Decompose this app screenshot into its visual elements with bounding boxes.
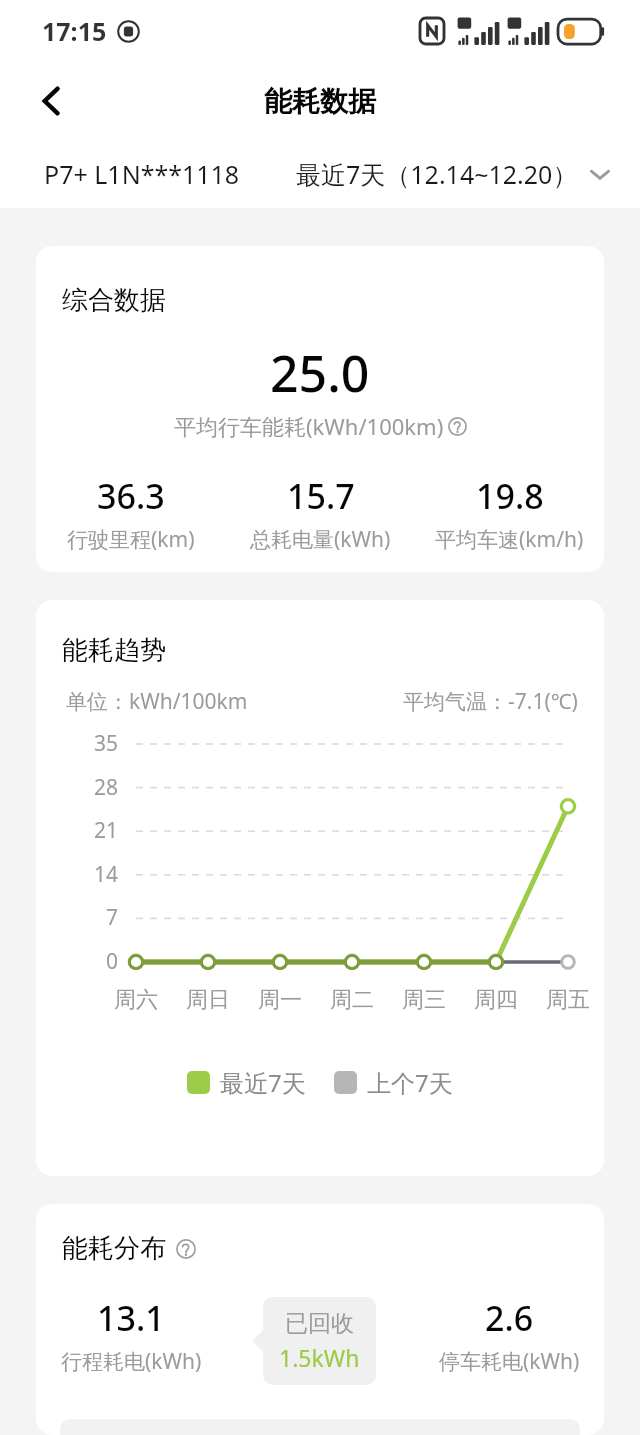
staticText: 总耗电量(kWh) xyxy=(250,525,391,554)
staticText: 17:15 xyxy=(42,14,107,48)
button[interactable]: P7+ L1N***1118 xyxy=(44,157,240,191)
button[interactable]: Back xyxy=(20,69,84,133)
staticText: 已回收 xyxy=(285,1309,354,1338)
staticText: 14 xyxy=(93,860,118,889)
staticText: 综合数据 xyxy=(62,284,166,317)
staticText: P7+ L1N***1118 xyxy=(44,157,240,191)
staticText: 平均车速(km/h) xyxy=(435,525,584,554)
staticText: 平均气温：-7.1(℃) xyxy=(403,687,578,716)
staticText: 周五 xyxy=(546,986,590,1014)
staticText: 周四 xyxy=(474,986,518,1014)
button[interactable]: 能耗分布 xyxy=(62,1232,196,1265)
button[interactable]: 综合数据 xyxy=(36,246,604,572)
staticText: 能耗数据 xyxy=(264,84,376,119)
staticText: 周六 xyxy=(114,986,158,1014)
staticText: 上个7天 xyxy=(367,1066,453,1099)
staticText: 周一 xyxy=(258,986,302,1014)
staticText: 周二 xyxy=(330,986,374,1014)
button[interactable]: 已回收 xyxy=(252,1297,376,1385)
button[interactable]: 最近7天 xyxy=(187,1066,306,1099)
button[interactable]: 36.3 xyxy=(36,473,226,554)
staticText: 单位：kWh/100km xyxy=(66,687,248,716)
button[interactable]: 15.7 xyxy=(226,473,415,554)
staticText: 周三 xyxy=(402,986,446,1014)
staticText: 能耗趋势 xyxy=(62,634,166,667)
staticText: 19.8 xyxy=(476,473,544,519)
button[interactable]: 上个7天 xyxy=(334,1066,453,1099)
staticText: 行程耗电(kWh) xyxy=(61,1347,202,1376)
staticText: 0 xyxy=(105,947,118,976)
staticText: 停车耗电(kWh) xyxy=(439,1347,580,1376)
staticText: 15.7 xyxy=(287,473,355,519)
button[interactable]: 2.6 xyxy=(415,1295,604,1376)
staticText: 21 xyxy=(93,816,118,845)
staticText: 13.1 xyxy=(97,1295,165,1341)
button[interactable]: 13.1 xyxy=(36,1295,226,1376)
staticText: 1.5kWh xyxy=(279,1342,360,1373)
staticText: 35 xyxy=(93,729,118,758)
staticText: 能耗分布 xyxy=(62,1232,166,1265)
staticText: 2.6 xyxy=(485,1295,534,1341)
staticText: 25.0 xyxy=(270,339,370,407)
button[interactable]: 最近7天（12.14~12.20） xyxy=(296,157,612,191)
staticText: 36.3 xyxy=(97,473,165,519)
staticText: 7 xyxy=(105,903,118,932)
staticText: 最近7天 xyxy=(220,1066,306,1099)
staticText: 周日 xyxy=(186,986,230,1014)
staticText: 最近7天（12.14~12.20） xyxy=(296,157,578,191)
staticText: 28 xyxy=(93,773,118,802)
button[interactable]: 19.8 xyxy=(415,473,604,554)
staticText: 平均行车能耗(kWh/100km) xyxy=(174,411,444,441)
staticText: 行驶里程(km) xyxy=(67,525,195,554)
